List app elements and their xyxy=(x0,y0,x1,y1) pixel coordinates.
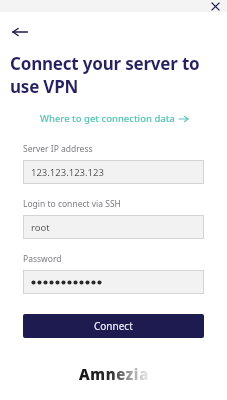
button[interactable]: Connect xyxy=(23,314,204,338)
staticText: Amnezia xyxy=(79,364,149,384)
staticText: Connect your server to use VPN xyxy=(10,52,217,98)
button[interactable]: Back xyxy=(6,18,34,46)
button[interactable]: Close xyxy=(208,0,222,12)
staticText: Server IP address xyxy=(23,143,93,155)
button[interactable]: 123.123.123.123 xyxy=(23,160,204,184)
button[interactable]: Where to get connection data xyxy=(0,112,227,125)
staticText: Where to get connection data xyxy=(40,112,175,125)
button[interactable]: root xyxy=(23,215,204,239)
staticText: Login to connect via SSH xyxy=(23,198,121,210)
staticText: Connect xyxy=(94,319,133,333)
staticText: root xyxy=(31,221,50,234)
staticText: Password xyxy=(23,253,62,265)
button[interactable] xyxy=(23,270,204,294)
staticText: 123.123.123.123 xyxy=(31,166,104,179)
